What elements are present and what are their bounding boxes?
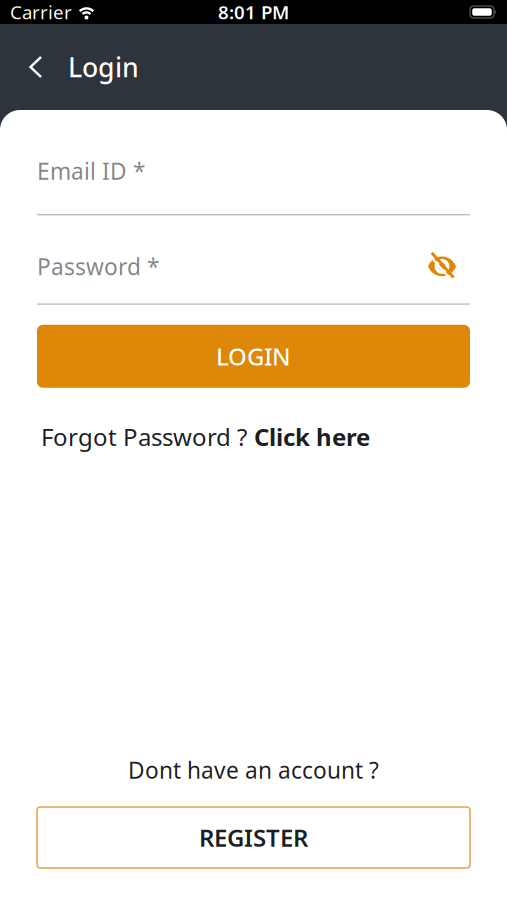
staticText: Email ID *	[37, 156, 145, 186]
staticText: Click here	[254, 421, 370, 453]
staticText: Carrier	[10, 0, 72, 24]
button[interactable]: REGISTER	[37, 807, 470, 868]
staticText: LOGIN	[216, 340, 291, 372]
staticText: Forgot Password ?	[41, 421, 247, 453]
button[interactable]: Show password	[425, 251, 459, 281]
button[interactable]: LOGIN	[37, 325, 470, 388]
button[interactable]: Back	[13, 45, 57, 89]
staticText: Password *	[37, 251, 159, 281]
staticText: REGISTER	[199, 822, 308, 853]
staticText: Dont have an account ?	[128, 755, 379, 785]
staticText: 8:01 PM	[218, 0, 289, 24]
button[interactable]: Click here	[254, 421, 370, 453]
staticText: Login	[68, 49, 139, 85]
